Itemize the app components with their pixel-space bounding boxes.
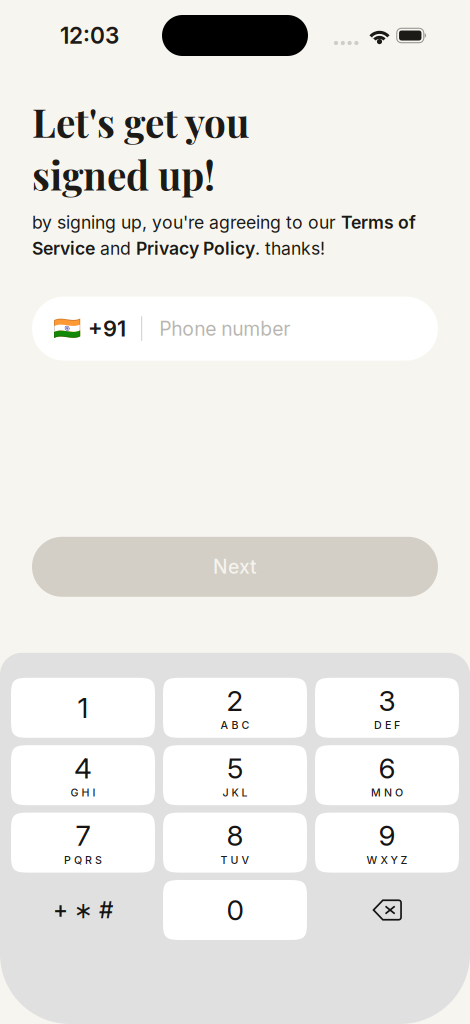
button[interactable]: 🇮🇳	[32, 297, 438, 361]
staticText: T U V	[220, 854, 249, 866]
button[interactable]: 1	[11, 678, 155, 738]
button[interactable]: 8	[163, 813, 307, 873]
staticText: 6	[378, 751, 395, 785]
staticText: A B C	[220, 719, 249, 732]
staticText: Next	[213, 555, 257, 578]
staticText: 4	[74, 751, 92, 785]
staticText: 7	[75, 819, 90, 853]
button[interactable]: Delete	[315, 880, 459, 940]
staticText: 2	[226, 684, 243, 718]
staticText: +91	[88, 315, 126, 342]
staticText: 1	[77, 691, 88, 725]
staticText: + ∗ #	[53, 896, 113, 924]
button[interactable]: 4	[11, 745, 155, 805]
staticText: 12:03	[60, 22, 119, 49]
button[interactable]: 7	[11, 813, 155, 873]
staticText: 🇮🇳	[53, 315, 81, 342]
button[interactable]: 0	[163, 880, 307, 940]
button[interactable]: 9	[315, 813, 459, 873]
button[interactable]: 2	[163, 678, 307, 738]
staticText: D E F	[374, 719, 400, 732]
staticText: 0	[226, 893, 243, 927]
staticText: Let's get you	[32, 96, 249, 147]
staticText: 9	[378, 819, 395, 853]
staticText: 5	[227, 751, 243, 785]
staticText: M N O	[371, 786, 403, 799]
staticText: 3	[378, 684, 395, 718]
staticText: by signing up, you're agreeing to our Te…	[32, 212, 416, 259]
staticText: G H I	[70, 786, 95, 799]
button[interactable]: 5	[163, 745, 307, 805]
button[interactable]: 6	[315, 745, 459, 805]
staticText: P Q R S	[64, 854, 102, 866]
staticText: J K L	[222, 786, 247, 799]
staticText: signed up!	[32, 148, 215, 200]
staticText: Phone number	[159, 317, 290, 340]
button[interactable]: + ∗ #	[11, 880, 155, 940]
staticText: W X Y Z	[366, 854, 407, 866]
staticText: 8	[226, 819, 243, 853]
button[interactable]: Next	[32, 537, 438, 597]
button[interactable]: 3	[315, 678, 459, 738]
